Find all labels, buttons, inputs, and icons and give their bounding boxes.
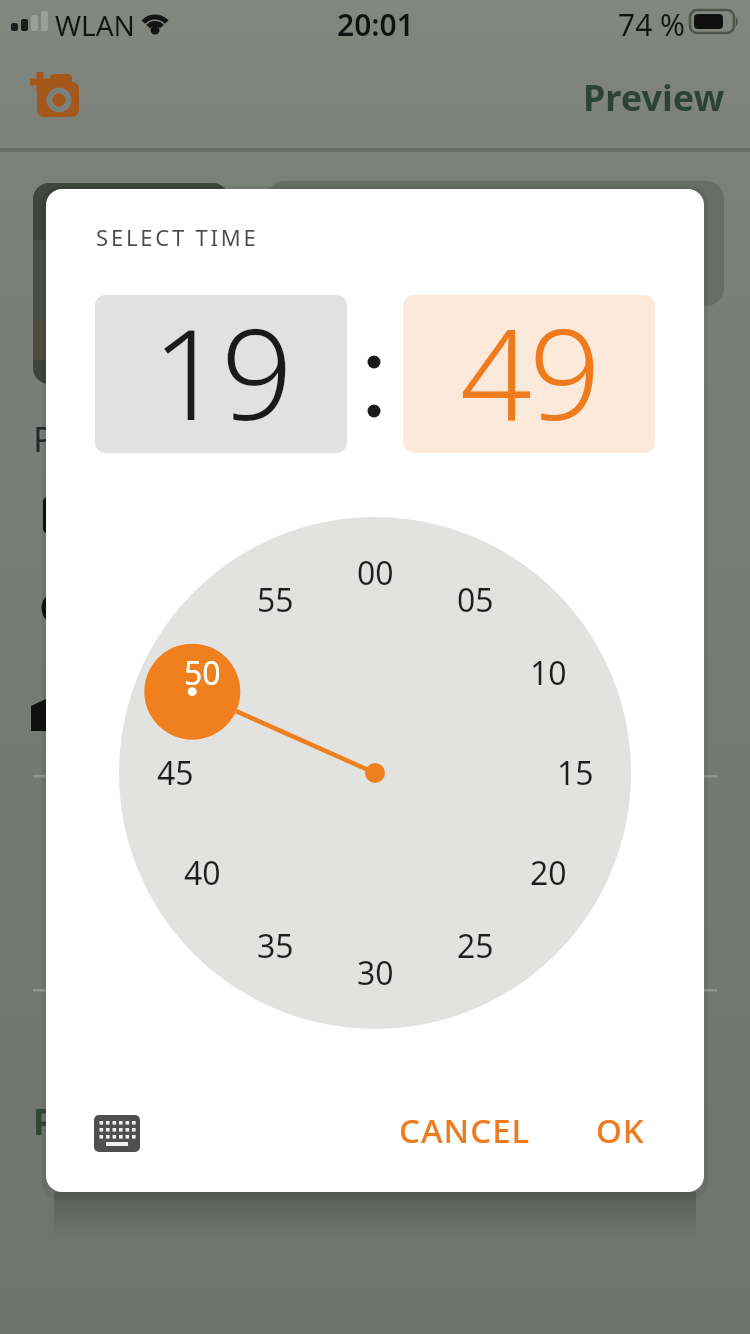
button[interactable] xyxy=(86,1105,148,1161)
staticText: WLAN xyxy=(55,6,135,44)
staticText: 15 xyxy=(557,751,594,795)
staticText: 50 xyxy=(184,651,221,695)
staticText: SELECT TIME xyxy=(96,222,259,252)
staticText: Preview xyxy=(583,73,725,117)
button[interactable] xyxy=(31,68,83,120)
button[interactable]: Preview xyxy=(569,73,739,117)
staticText: 49 xyxy=(460,295,598,443)
staticText: 05 xyxy=(457,578,494,622)
staticText: 55 xyxy=(257,578,294,622)
staticText: P xyxy=(33,1097,56,1146)
button[interactable]: OK xyxy=(565,1100,675,1160)
staticText: 35 xyxy=(257,924,294,968)
button[interactable]: 19 xyxy=(95,295,347,453)
button[interactable]: CANCEL xyxy=(375,1100,555,1160)
staticText: 19 xyxy=(152,295,290,443)
staticText: 40 xyxy=(184,851,221,895)
staticText: CANCEL xyxy=(399,1108,531,1153)
staticText: 25 xyxy=(457,924,494,968)
staticText: 74 % xyxy=(618,4,686,38)
staticText: OK xyxy=(596,1108,645,1153)
staticText: 45 xyxy=(157,751,194,795)
staticText: P xyxy=(33,415,55,463)
staticText: 20:01 xyxy=(337,4,414,38)
staticText: 10 xyxy=(530,651,567,695)
staticText: 00 xyxy=(357,551,394,595)
staticText: 20 xyxy=(530,851,567,895)
staticText: 30 xyxy=(357,951,394,995)
button[interactable]: 49 xyxy=(403,295,655,453)
